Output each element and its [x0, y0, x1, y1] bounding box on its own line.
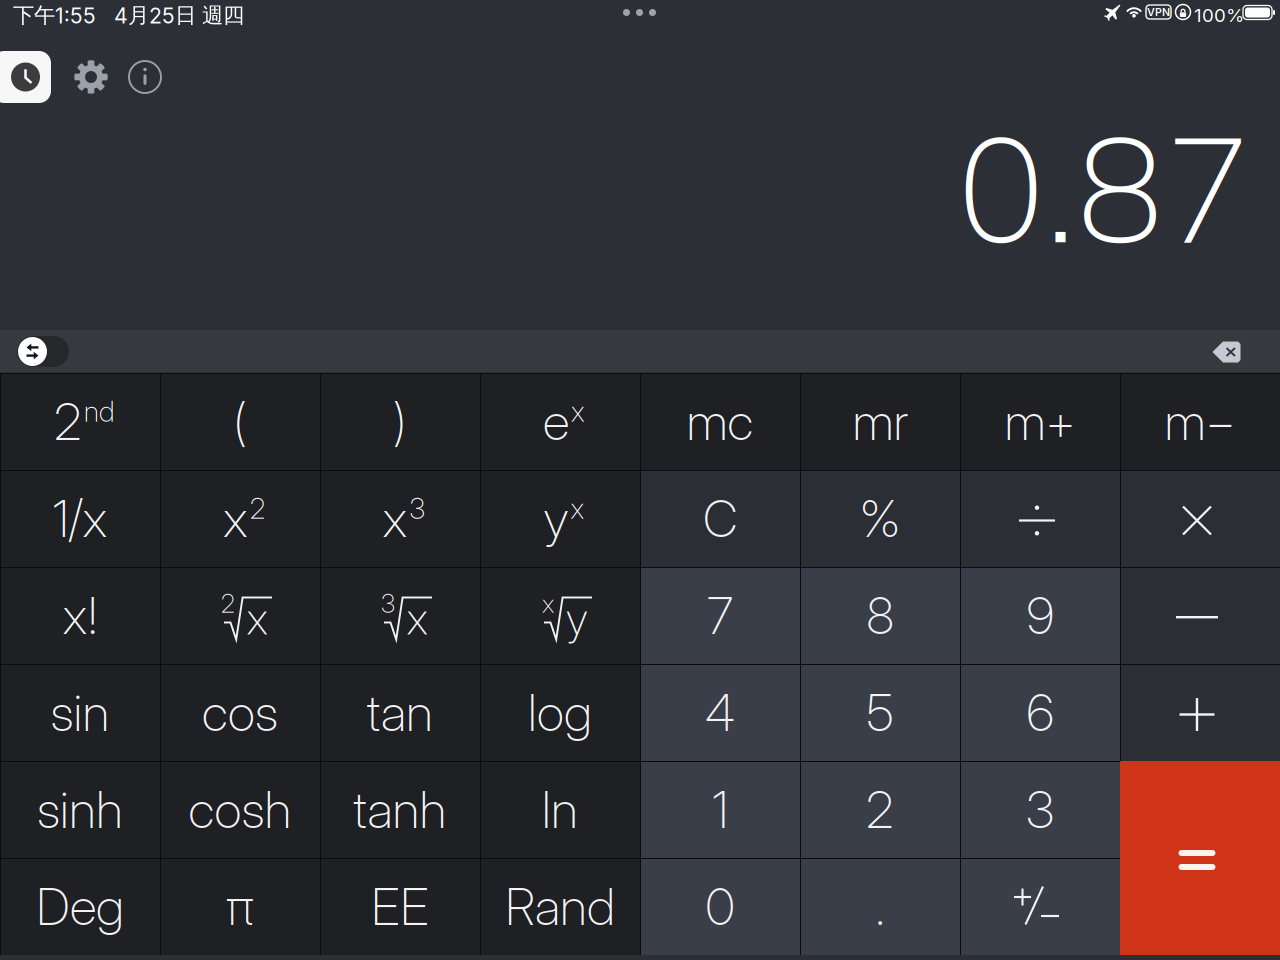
- button[interactable]: ): [320, 373, 480, 470]
- button[interactable]: sin: [0, 664, 160, 761]
- staticText: 1: [712, 779, 728, 840]
- button[interactable]: 1: [640, 761, 800, 858]
- button[interactable]: Equals: [0, 373, 160, 567]
- staticText: cosh: [188, 779, 291, 840]
- staticText: 100%: [1194, 4, 1244, 27]
- staticText: C: [703, 488, 737, 549]
- staticText: m−: [1164, 391, 1235, 452]
- button[interactable]: mr: [800, 373, 960, 470]
- button[interactable]: .: [800, 858, 960, 955]
- button[interactable]: EE: [320, 858, 480, 955]
- button[interactable]: ln: [480, 761, 640, 858]
- staticText: 下午1:55 4月25日 週四: [13, 2, 244, 29]
- staticText: tanh: [353, 779, 446, 840]
- staticText: 1/x: [52, 488, 107, 549]
- staticText: 0.87: [957, 95, 1252, 279]
- staticText: log: [528, 682, 592, 743]
- button[interactable]: 0: [640, 858, 800, 955]
- staticText: 3: [409, 492, 425, 526]
- button[interactable]: 2: [160, 567, 320, 664]
- button[interactable]: cos: [160, 664, 320, 761]
- button[interactable]: Divide: [960, 470, 1120, 567]
- staticText: 2: [54, 391, 82, 452]
- button[interactable]: 5: [800, 664, 960, 761]
- staticText: 5: [866, 682, 893, 743]
- button[interactable]: Delete: [0, 330, 32, 354]
- button[interactable]: %: [800, 470, 960, 567]
- button[interactable]: Rand: [480, 858, 640, 955]
- button[interactable]: Toggle second function: [0, 330, 52, 361]
- staticText: e: [543, 391, 569, 452]
- staticText: 4: [705, 682, 735, 743]
- button[interactable]: y: [480, 470, 640, 567]
- staticText: mr: [852, 391, 907, 452]
- button[interactable]: x!: [0, 567, 160, 664]
- staticText: π: [226, 876, 254, 937]
- button[interactable]: History: [0, 51, 59, 103]
- staticText: 7: [707, 585, 733, 646]
- staticText: x: [406, 592, 427, 645]
- staticText: (: [233, 391, 247, 452]
- button[interactable]: π: [160, 858, 320, 955]
- staticText: cos: [202, 682, 278, 743]
- button[interactable]: 7: [640, 567, 800, 664]
- button[interactable]: C: [640, 470, 800, 567]
- button[interactable]: Deg: [0, 858, 160, 955]
- staticText: ): [393, 391, 407, 452]
- staticText: Deg: [36, 876, 124, 937]
- button[interactable]: tanh: [320, 761, 480, 858]
- staticText: m+: [1004, 391, 1075, 452]
- button[interactable]: 2: [800, 761, 960, 858]
- button[interactable]: tan: [320, 664, 480, 761]
- button[interactable]: 2: [0, 373, 160, 470]
- button[interactable]: 3: [960, 761, 1120, 858]
- staticText: tan: [367, 682, 433, 743]
- button[interactable]: e: [480, 373, 640, 470]
- staticText: 2: [250, 492, 265, 526]
- button[interactable]: log: [480, 664, 640, 761]
- button[interactable]: Multiply: [1120, 470, 1280, 567]
- staticText: VPN: [1147, 5, 1170, 18]
- button[interactable]: 8: [800, 567, 960, 664]
- button[interactable]: Settings: [0, 51, 40, 91]
- button[interactable]: 3: [320, 567, 480, 664]
- staticText: x: [571, 395, 585, 429]
- staticText: x: [382, 488, 407, 549]
- staticText: 3: [381, 588, 395, 619]
- staticText: 8: [866, 585, 893, 646]
- staticText: nd: [84, 395, 114, 429]
- staticText: x!: [62, 585, 97, 646]
- button[interactable]: x: [480, 567, 640, 664]
- button[interactable]: cosh: [160, 761, 320, 858]
- staticText: x: [542, 588, 554, 619]
- button[interactable]: (: [160, 373, 320, 470]
- staticText: 9: [1026, 585, 1053, 646]
- button[interactable]: m−: [1120, 373, 1280, 470]
- button[interactable]: mc: [640, 373, 800, 470]
- staticText: 6: [1026, 682, 1053, 743]
- button[interactable]: 9: [960, 567, 1120, 664]
- button[interactable]: Add: [1120, 664, 1280, 761]
- button[interactable]: 1/x: [0, 470, 160, 567]
- button[interactable]: m+: [960, 373, 1120, 470]
- staticText: 2: [866, 779, 894, 840]
- staticText: EE: [371, 876, 429, 937]
- button[interactable]: 6: [960, 664, 1120, 761]
- staticText: 0: [705, 876, 734, 937]
- staticText: 3: [1026, 779, 1054, 840]
- button[interactable]: Info: [0, 51, 40, 91]
- staticText: Rand: [505, 876, 615, 937]
- button[interactable]: [960, 858, 1120, 955]
- staticText: .: [875, 876, 885, 937]
- staticText: x: [223, 488, 248, 549]
- button[interactable]: x: [320, 470, 480, 567]
- staticText: sinh: [37, 779, 123, 840]
- button[interactable]: 4: [640, 664, 800, 761]
- button[interactable]: x: [160, 470, 320, 567]
- staticText: %: [859, 488, 900, 549]
- button[interactable]: Subtract: [1120, 567, 1280, 664]
- staticText: sin: [50, 682, 109, 743]
- staticText: y: [566, 592, 588, 645]
- button[interactable]: sinh: [0, 761, 160, 858]
- staticText: mc: [686, 391, 753, 452]
